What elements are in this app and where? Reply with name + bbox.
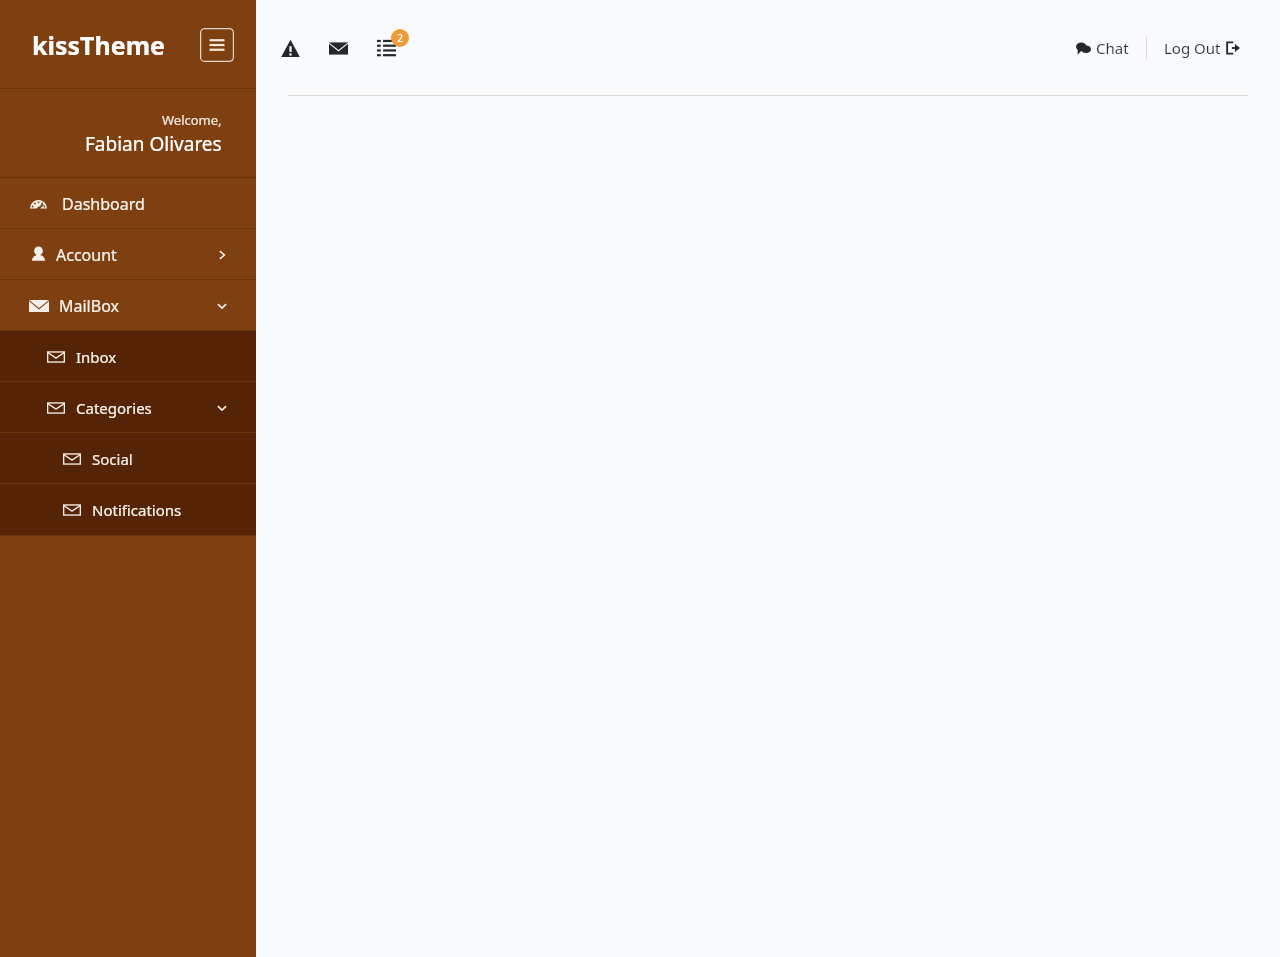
button[interactable]: Tasks, 2 new [362,24,410,72]
staticText: Categories [76,398,152,418]
button[interactable]: Log Out [1160,32,1244,64]
staticText: Inbox [76,347,117,367]
button[interactable]: MailBox [0,280,256,331]
staticText: Dashboard [62,193,145,215]
button[interactable]: Chat [1072,32,1133,64]
button[interactable]: Messages [314,24,362,72]
button[interactable]: Alerts [266,24,314,72]
button[interactable]: Dashboard [0,178,256,229]
staticText: Welcome, [162,111,222,129]
button[interactable]: Account [0,229,256,280]
staticText: Account [56,244,117,266]
button[interactable]: Inbox [0,331,256,382]
staticText: kissTheme [32,28,165,62]
staticText: Chat [1096,38,1129,58]
staticText: MailBox [59,295,119,317]
staticText: Notifications [92,500,182,520]
staticText: 2 [397,31,403,45]
staticText: Social [92,449,133,469]
button[interactable]: Notifications [0,484,256,536]
button[interactable]: Social [0,433,256,484]
button[interactable]: Categories [0,382,256,433]
staticText: Fabian Olivares [85,131,222,157]
button[interactable]: Toggle menu [200,28,234,62]
staticText: Log Out [1164,38,1221,58]
